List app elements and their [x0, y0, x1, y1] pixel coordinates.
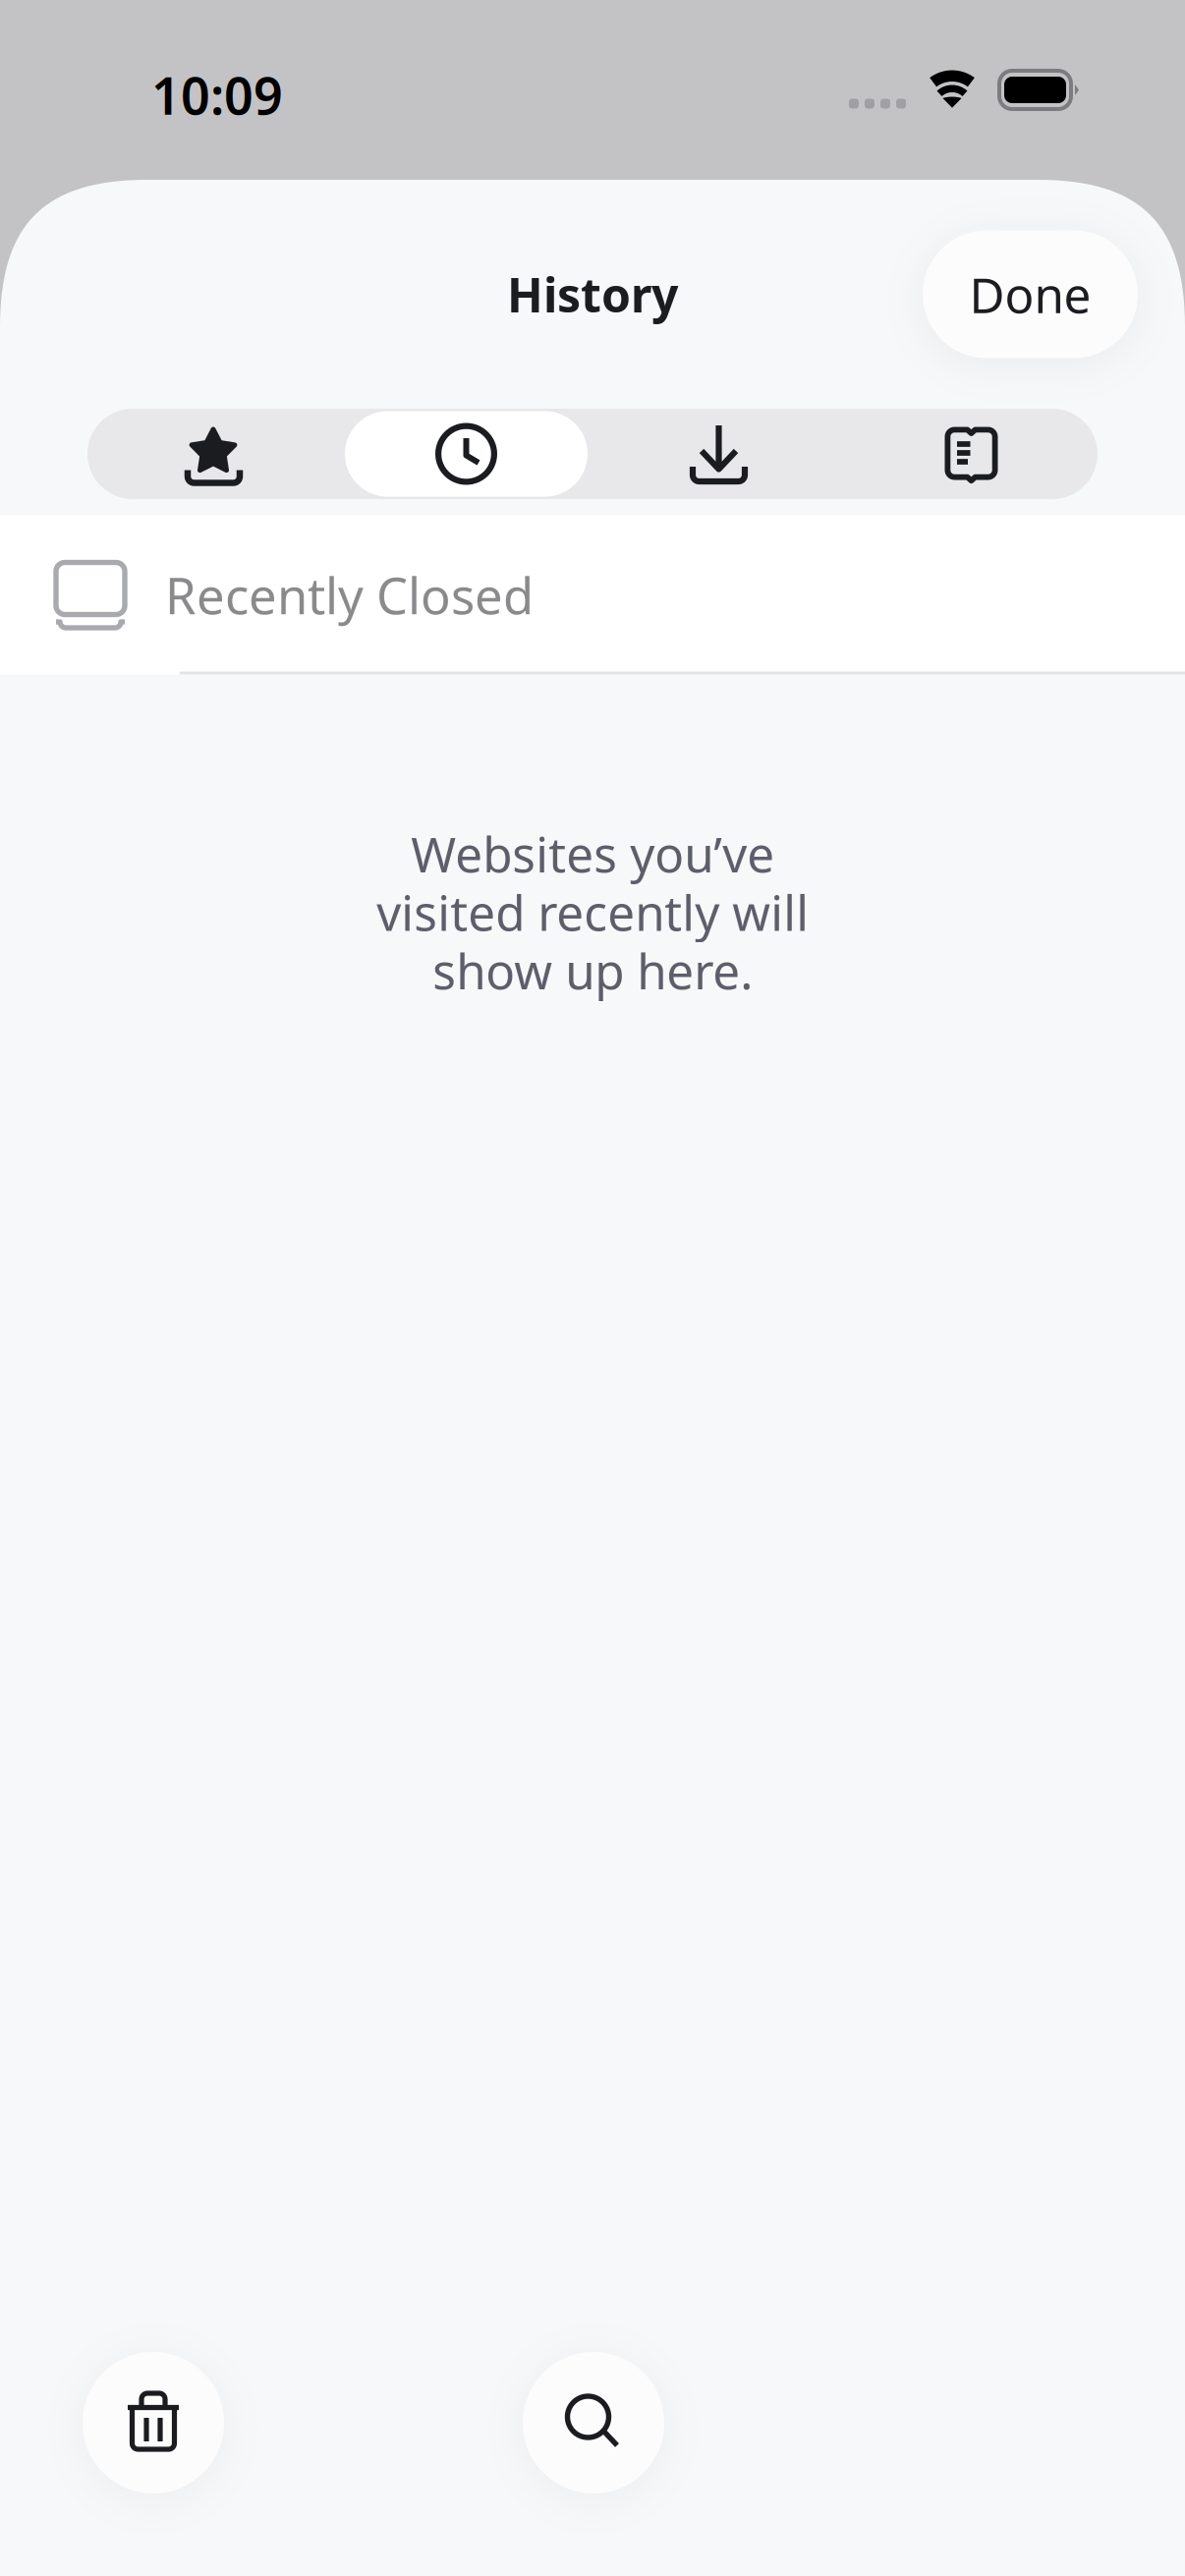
staticText: Websites you’ve visited recently will sh…: [376, 821, 809, 1003]
button[interactable]: Clear History: [83, 2352, 224, 2493]
button[interactable]: History: [340, 409, 592, 499]
staticText: History: [507, 263, 678, 325]
button[interactable]: Search History: [523, 2352, 664, 2493]
button[interactable]: Bookmarks: [87, 409, 340, 499]
button[interactable]: Downloads: [592, 409, 845, 499]
button[interactable]: Reading List: [845, 409, 1098, 499]
staticText: 10:09: [151, 61, 283, 129]
staticText: Done: [969, 262, 1091, 326]
button[interactable]: Done: [923, 230, 1138, 358]
button[interactable]: Recently Closed: [0, 514, 1185, 676]
staticText: Recently Closed: [165, 562, 534, 628]
